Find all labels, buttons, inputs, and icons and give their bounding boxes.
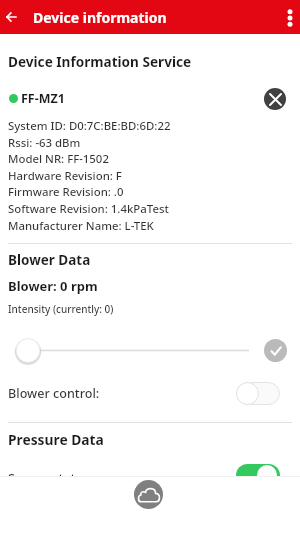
- button[interactable]: Intensity slider: [0, 334, 300, 367]
- staticText: Device Information Service: [8, 52, 192, 71]
- staticText: Blower: 0 rpm: [8, 277, 98, 295]
- staticText: Sensor state:: [8, 470, 87, 487]
- staticText: Device information: [33, 8, 167, 27]
- button[interactable]: Apply intensity: [264, 339, 287, 362]
- staticText: Software Revision: 1.4kPaTest: [8, 201, 169, 217]
- staticText: System ID: D0:7C:BE:BD:6D:22: [8, 118, 171, 134]
- button[interactable]: Disconnect: [264, 88, 286, 110]
- button[interactable]: Navigate up: [0, 5, 23, 29]
- staticText: Blower control:: [8, 385, 100, 402]
- staticText: Hardware Revision: F: [8, 168, 122, 184]
- staticText: Pressure Data: [8, 430, 104, 449]
- button[interactable]: [236, 463, 280, 487]
- button[interactable]: [236, 381, 280, 405]
- staticText: Intensity (currently: 0): [8, 302, 114, 316]
- staticText: Firmware Revision: .0: [8, 184, 124, 200]
- staticText: Model NR: FF-1502: [8, 151, 109, 167]
- staticText: Rssi: -63 dBm: [8, 135, 81, 151]
- staticText: Manufacturer Name: L-TEK: [8, 218, 154, 234]
- button[interactable]: More options: [278, 6, 300, 30]
- button[interactable]: Cloud upload: [134, 480, 163, 509]
- staticText: FF-MZ1: [21, 90, 65, 107]
- staticText: Blower Data: [8, 251, 91, 269]
